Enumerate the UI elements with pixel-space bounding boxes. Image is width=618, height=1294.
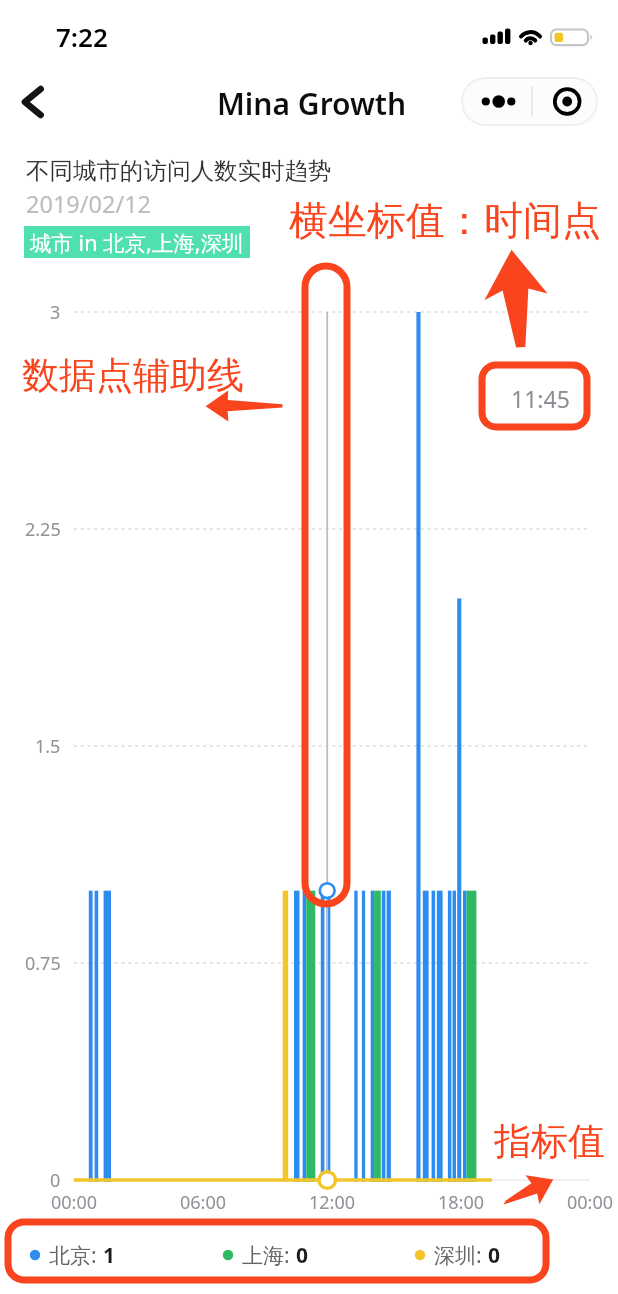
staticText: 0 [488,1241,501,1270]
staticText: 2019/02/12 [26,188,152,220]
button[interactable]: Back [9,78,57,126]
staticText: 2.25 [25,517,61,542]
staticText: 上海: [242,1241,296,1270]
staticText: 指标值 [494,1118,605,1165]
staticText: 7:22 [56,19,108,54]
staticText: 1.5 [35,734,61,759]
staticText: 3 [50,300,61,325]
staticText: 数据点辅助线 [22,352,244,399]
staticText: Mina Growth [217,83,407,124]
staticText: 0.75 [25,951,61,976]
button[interactable]: 上海: [220,1239,309,1271]
button[interactable]: 城市 in 北京,上海,深圳 [30,226,244,258]
staticText: 11:45 [511,383,570,414]
staticText: 北京: [49,1241,103,1270]
staticText: 06:00 [180,1190,227,1215]
staticText: 00:00 [51,1190,98,1215]
staticText: 横坐标值：时间点 [289,196,601,245]
staticText: 城市 in 北京,上海,深圳 [30,228,244,257]
button[interactable]: 北京: [27,1239,116,1271]
staticText: 0 [296,1241,309,1270]
button[interactable]: More options [461,77,598,126]
staticText: 12:00 [309,1190,356,1215]
staticText: 1 [103,1241,116,1270]
staticText: 0 [50,1168,61,1193]
staticText: 18:00 [438,1190,485,1215]
staticText: 深圳: [434,1241,488,1270]
staticText: 不同城市的访问人数实时趋势 [26,156,332,186]
button[interactable]: 深圳: [412,1239,501,1271]
staticText: 00:00 [567,1190,614,1215]
